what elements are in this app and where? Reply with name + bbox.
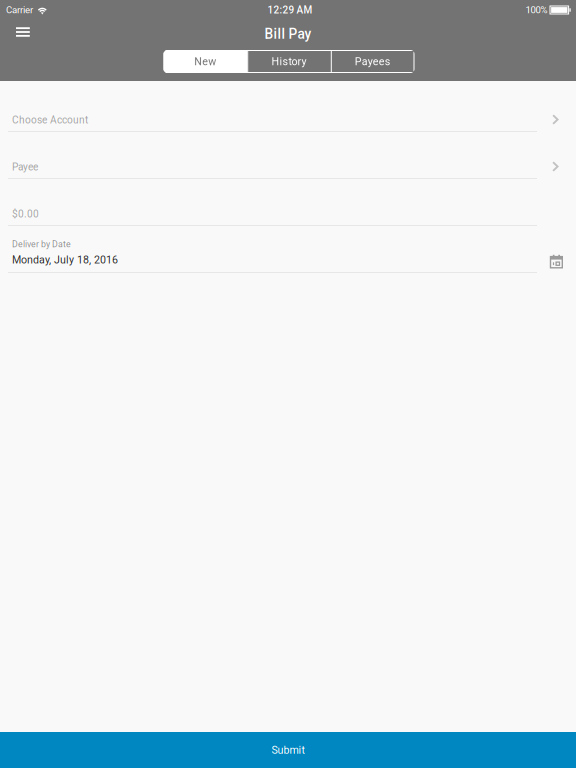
button[interactable]: Submit	[0, 732, 576, 768]
staticText: Payees	[355, 55, 391, 68]
staticText: 100%	[525, 4, 547, 16]
staticText: Submit	[271, 744, 304, 756]
staticText: Bill Pay	[264, 26, 311, 42]
staticText: Carrier	[6, 4, 33, 16]
staticText: Monday, July 18, 2016	[12, 253, 118, 266]
staticText: Choose Account	[12, 114, 88, 126]
staticText: New	[194, 55, 216, 68]
staticText: 12:29 AM	[267, 4, 312, 16]
button[interactable]: Payees	[331, 50, 414, 73]
staticText: History	[271, 55, 306, 68]
staticText: $0.00	[12, 208, 39, 220]
button[interactable]: Payee	[0, 132, 576, 179]
button[interactable]: Menu	[0, 21, 44, 47]
button[interactable]: Deliver by Date	[0, 226, 576, 273]
staticText: Payee	[12, 161, 38, 173]
button[interactable]: New	[163, 50, 247, 73]
staticText: Deliver by Date	[12, 239, 71, 249]
button[interactable]: History	[247, 50, 331, 73]
button[interactable]: Choose Account	[0, 85, 576, 132]
